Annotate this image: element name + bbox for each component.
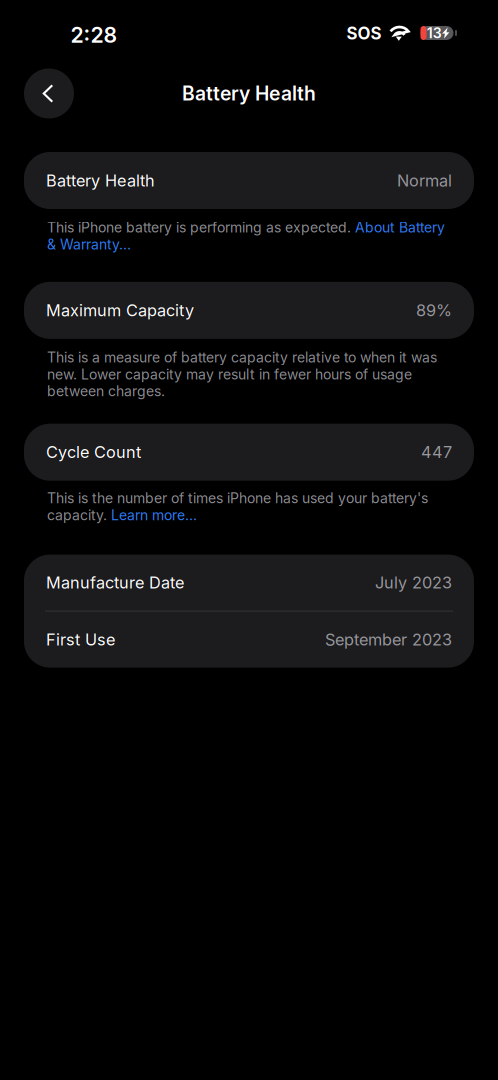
button[interactable]: Battery Health <box>0 152 498 209</box>
button[interactable]: First Use <box>24 612 474 668</box>
staticText: Cycle Count <box>46 442 141 462</box>
staticText: First Use <box>46 630 115 649</box>
staticText: 89% <box>416 300 452 320</box>
staticText: Maximum Capacity <box>46 300 194 320</box>
staticText: 2:28 <box>70 22 117 48</box>
staticText: July 2023 <box>375 573 452 592</box>
staticText: September 2023 <box>325 630 452 649</box>
button[interactable]: Manufacture Date <box>24 555 474 611</box>
staticText: 13 <box>427 24 442 41</box>
staticText: This is the number of times iPhone has u… <box>47 490 428 524</box>
staticText: Battery Health <box>182 82 316 105</box>
staticText: SOS <box>346 23 381 44</box>
staticText: Battery Health <box>46 171 155 190</box>
staticText: This iPhone battery is performing as exp… <box>47 219 445 253</box>
button[interactable]: Maximum Capacity <box>0 282 498 339</box>
button[interactable]: Back <box>24 68 74 118</box>
button[interactable]: Cycle Count <box>0 424 498 481</box>
staticText: Normal <box>397 171 452 190</box>
staticText: Manufacture Date <box>46 573 184 592</box>
staticText: This is a measure of battery capacity re… <box>47 349 437 400</box>
staticText: 447 <box>421 442 452 462</box>
